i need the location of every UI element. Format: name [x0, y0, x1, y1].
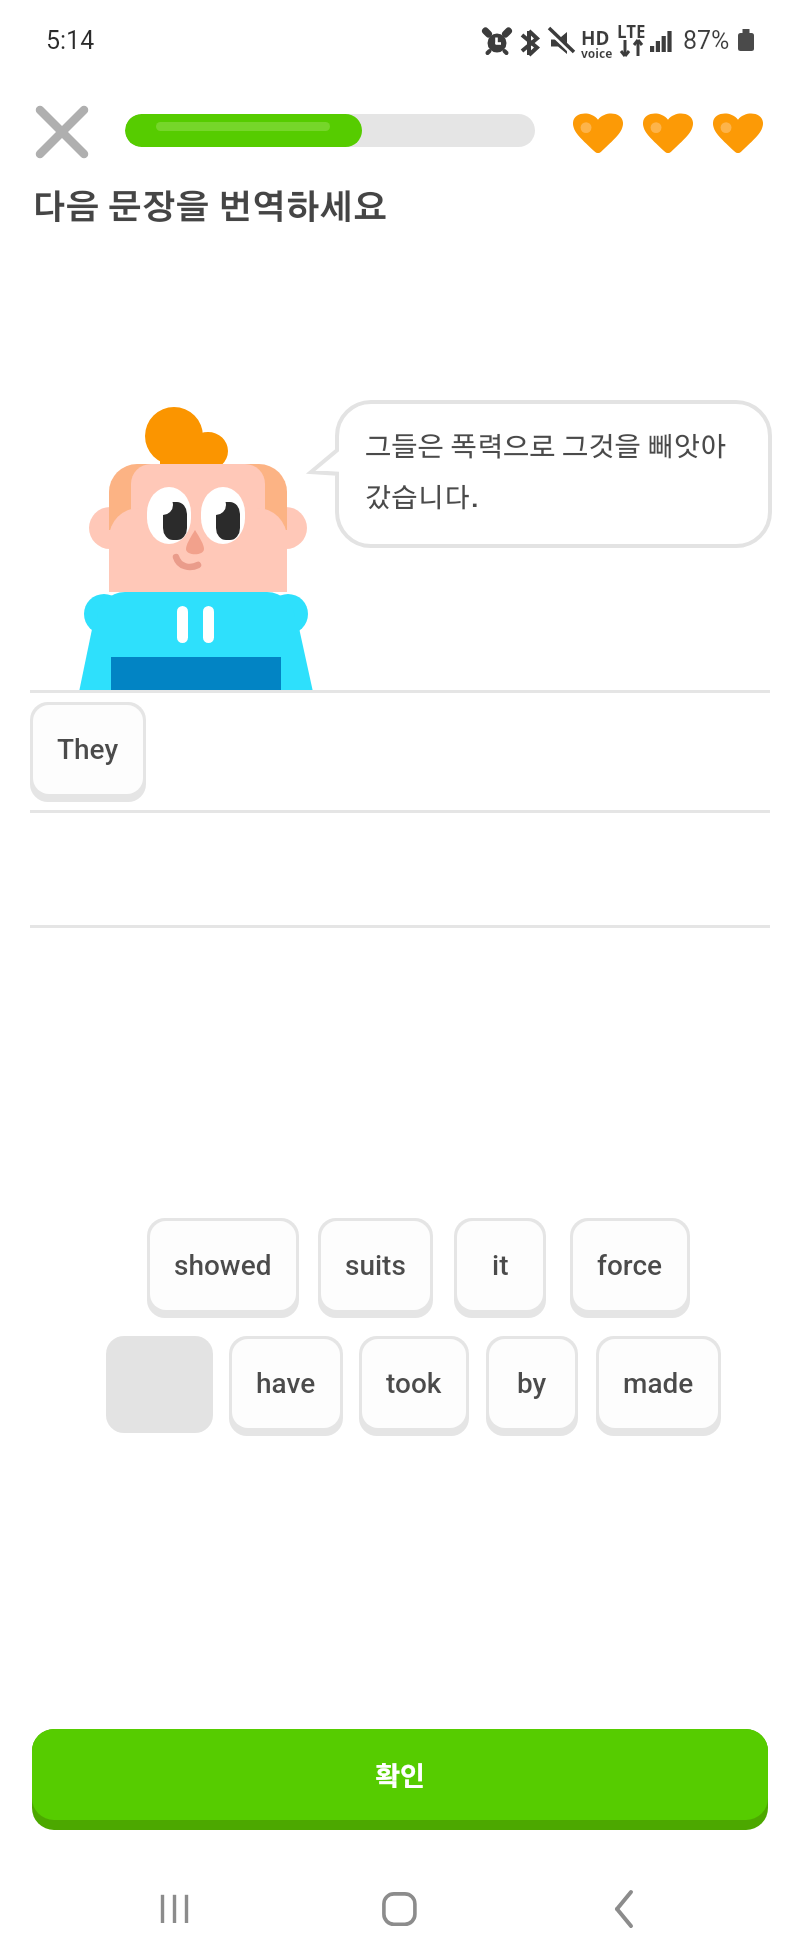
staticText: showed: [174, 1249, 272, 1282]
button[interactable]: Hearts: 3 remaining: [572, 110, 764, 154]
staticText: took: [386, 1367, 442, 1400]
button[interactable]: Close: [34, 104, 90, 160]
button[interactable]: showed: [150, 1221, 296, 1310]
button[interactable]: have: [232, 1339, 340, 1428]
button[interactable]: suits: [321, 1221, 430, 1310]
button[interactable]: Home: [358, 1874, 442, 1956]
staticText: voice: [581, 45, 613, 61]
button[interactable]: made: [599, 1339, 718, 1428]
button[interactable]: force: [573, 1221, 687, 1310]
button[interactable]: took: [362, 1339, 466, 1428]
button[interactable]: Back: [583, 1874, 667, 1956]
staticText: have: [256, 1367, 316, 1400]
staticText: 87%: [683, 26, 730, 55]
staticText: 5:14: [46, 26, 95, 55]
staticText: 다음 문장을 번역하세요: [32, 192, 388, 226]
staticText: made: [623, 1367, 694, 1400]
staticText: it: [492, 1249, 509, 1282]
button[interactable]: by: [489, 1339, 575, 1428]
button[interactable]: Recent apps: [133, 1874, 217, 1956]
staticText: suits: [345, 1249, 406, 1282]
staticText: 확인: [375, 1755, 425, 1794]
staticText: force: [597, 1249, 663, 1282]
staticText: LTE: [617, 20, 646, 43]
button[interactable]: it: [457, 1221, 543, 1310]
button[interactable]: Lesson progress: [125, 114, 535, 147]
staticText: HD: [581, 25, 610, 51]
button[interactable]: They: [33, 705, 143, 794]
staticText: 그들은 폭력으로 그것을 빼앗아 갔습니다.: [365, 434, 727, 513]
staticText: by: [517, 1367, 547, 1400]
staticText: They: [57, 733, 119, 766]
button[interactable]: 확인: [32, 1729, 768, 1830]
